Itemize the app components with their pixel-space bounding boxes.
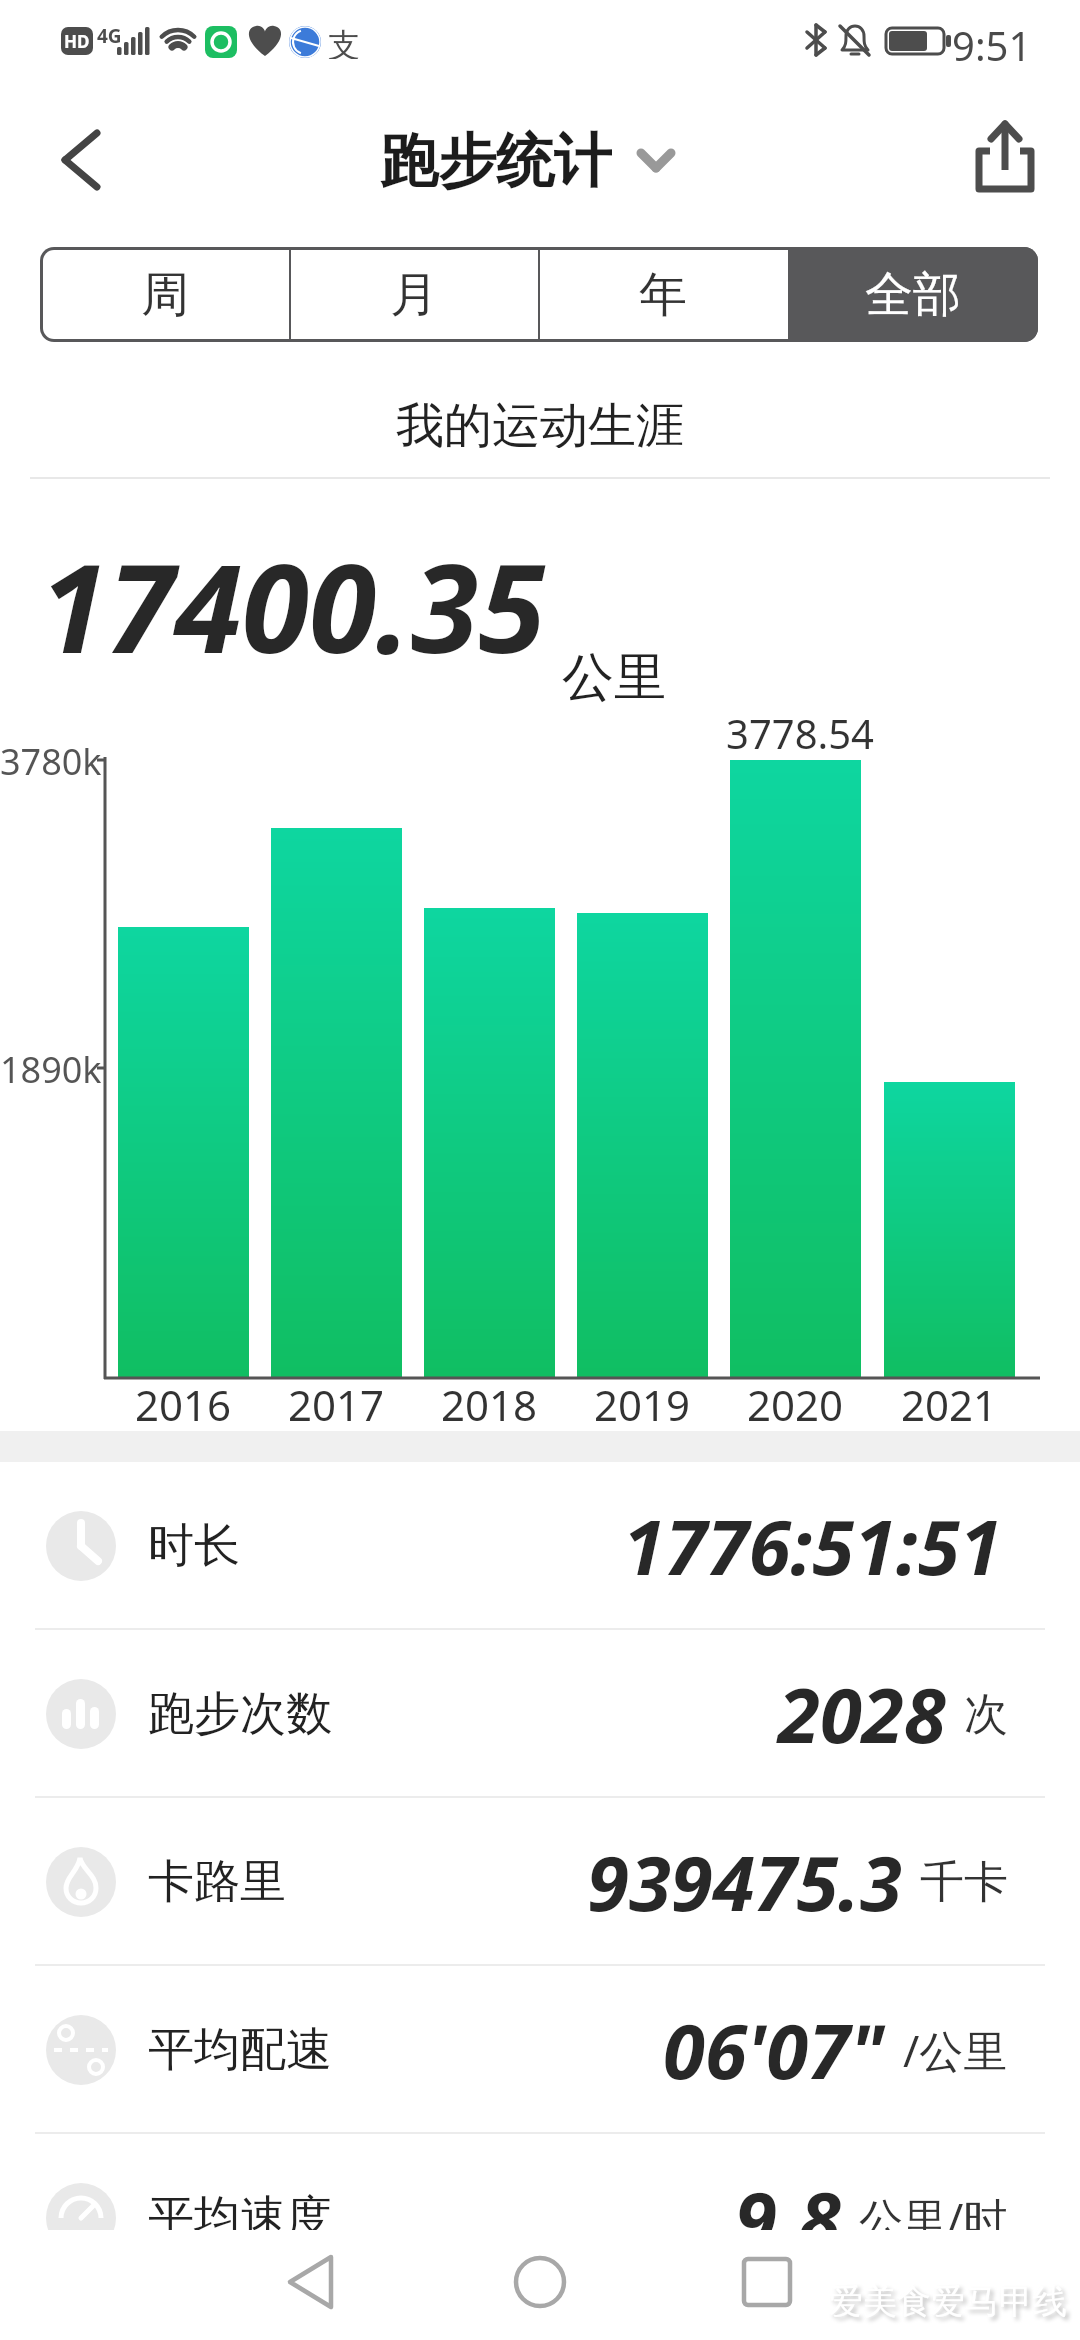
staticText: 2021: [901, 1376, 998, 1422]
staticText: /公里: [903, 2020, 1008, 2080]
button[interactable]: 月: [289, 247, 538, 342]
button[interactable]: 卡路里: [0, 1798, 1080, 1966]
button[interactable]: [965, 115, 1045, 200]
staticText: 2017: [288, 1376, 385, 1422]
button[interactable]: [460, 2235, 620, 2335]
staticText: 时长: [148, 1517, 240, 1575]
button[interactable]: 全部: [788, 247, 1038, 342]
staticText: 939475.3: [587, 1830, 902, 1934]
button[interactable]: 周: [40, 247, 289, 342]
staticText: 平均速度: [148, 2189, 332, 2247]
button[interactable]: 跑步统计: [380, 125, 700, 197]
button[interactable]: 平均速度: [0, 2134, 1080, 2302]
staticText: 公里/时: [859, 2188, 1008, 2248]
button[interactable]: [40, 125, 120, 195]
staticText: 千卡: [920, 1855, 1008, 1910]
button[interactable]: [670, 2235, 830, 2335]
staticText: HD: [64, 30, 90, 53]
staticText: 2028: [778, 1662, 946, 1766]
staticText: 9.8: [735, 2166, 841, 2270]
staticText: 爱美食爱马甲线: [829, 2280, 1067, 2323]
button[interactable]: 跑步次数: [0, 1630, 1080, 1798]
staticText: 跑步次数: [148, 1685, 332, 1743]
staticText: 2020: [747, 1376, 844, 1422]
staticText: 年: [639, 265, 687, 325]
button[interactable]: [250, 2235, 410, 2335]
staticText: 4G: [97, 23, 122, 43]
button[interactable]: 平均配速: [0, 1966, 1080, 2134]
staticText: 1776:51:51: [623, 1494, 1002, 1598]
staticText: 次: [964, 1687, 1008, 1742]
staticText: 1890k: [0, 1045, 102, 1089]
staticText: 2019: [594, 1376, 691, 1422]
staticText: 3780k: [0, 737, 102, 781]
staticText: 卡路里: [148, 1853, 286, 1911]
staticText: 我的运动生涯: [396, 396, 684, 448]
staticText: 2016: [135, 1376, 232, 1422]
button[interactable]: 年: [538, 247, 788, 342]
staticText: 支: [328, 25, 360, 59]
staticText: 月: [390, 265, 438, 325]
staticText: 跑步统计: [380, 125, 612, 197]
staticText: 17400.35: [40, 523, 546, 663]
staticText: 公里: [562, 645, 666, 707]
staticText: 周: [141, 265, 189, 325]
staticText: 2018: [441, 1376, 538, 1422]
staticText: 平均配速: [148, 2021, 332, 2079]
staticText: 全部: [865, 265, 961, 325]
staticText: 3778.54: [726, 706, 874, 750]
staticText: 9:51: [952, 18, 1032, 64]
button[interactable]: 时长: [0, 1462, 1080, 1630]
staticText: 06'07": [663, 1998, 885, 2102]
